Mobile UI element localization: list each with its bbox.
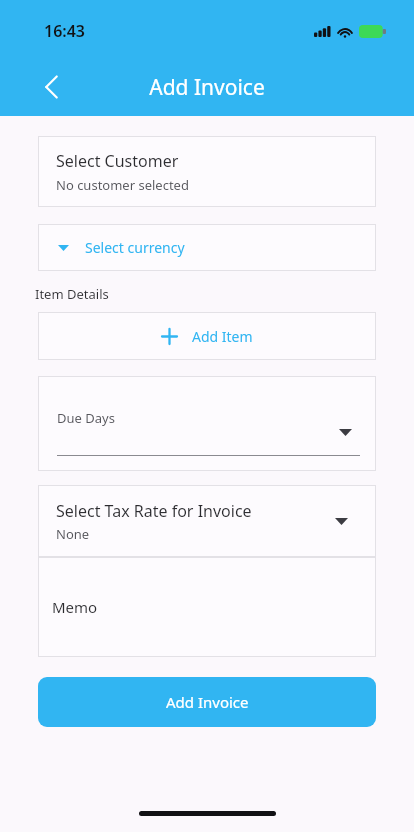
staticText: Add Invoice [0, 73, 414, 102]
button[interactable]: Add Item [38, 312, 376, 360]
staticText: No customer selected [56, 176, 189, 194]
button[interactable]: Select Tax Rate for Invoice [38, 485, 376, 557]
staticText: 16:43 [44, 20, 86, 42]
staticText: Select Customer [56, 150, 179, 172]
staticText: Select Tax Rate for Invoice [56, 500, 252, 522]
staticText: Select currency [85, 238, 185, 257]
button[interactable]: Select currency [38, 224, 376, 271]
button[interactable]: Add Invoice [38, 677, 376, 727]
button[interactable]: Back [32, 68, 70, 106]
staticText: Add Item [192, 327, 253, 346]
button[interactable]: Due Days [38, 376, 376, 471]
button[interactable]: Select Customer [38, 136, 376, 207]
staticText: Due Days [57, 409, 115, 427]
button[interactable]: Memo [38, 557, 376, 657]
staticText: Add Invoice [166, 692, 249, 712]
staticText: Item Details [35, 285, 109, 303]
staticText: None [56, 525, 90, 543]
staticText: Memo [52, 597, 98, 617]
